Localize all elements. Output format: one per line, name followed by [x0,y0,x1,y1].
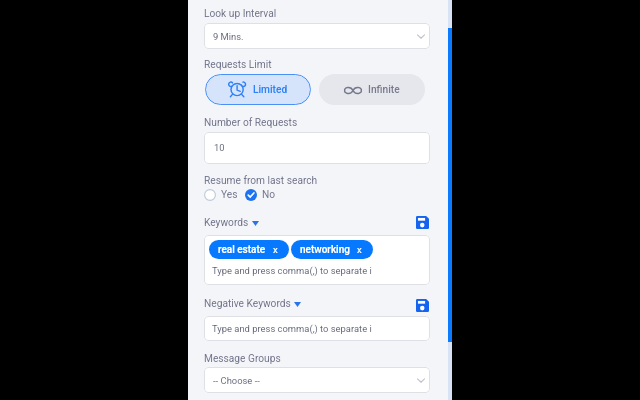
staticText: Limited [253,84,288,96]
button[interactable]: Save negative keywords [415,298,429,312]
button[interactable]: Negative Keywords [204,298,301,310]
staticText: Infinite [368,84,400,96]
staticText: Resume from last search [204,175,318,187]
button[interactable]: Yes [204,189,238,201]
staticText: Keywords [204,217,249,229]
button[interactable]: networking [291,240,373,259]
button[interactable]: Limited [205,74,311,105]
button[interactable]: -- Choose -- [204,367,430,393]
staticText: x [357,244,362,255]
staticText: networking [300,244,350,256]
staticText: 9 Mins. [213,31,244,42]
staticText: -- Choose -- [213,375,260,386]
button[interactable]: Infinite [319,74,425,105]
button[interactable]: 10 [204,132,430,164]
staticText: Type and press comma(,) to separate i [212,323,372,334]
staticText: Requests Limit [204,59,272,71]
staticText: real estate [218,244,266,256]
button[interactable]: real estate [204,235,430,285]
staticText: Look up Interval [204,8,277,20]
staticText: 10 [214,142,225,153]
button[interactable]: Save keywords [415,215,429,229]
staticText: x [273,244,278,255]
staticText: Yes [221,189,238,201]
button[interactable]: Keywords [204,217,259,229]
staticText: Negative Keywords [204,298,291,310]
button[interactable]: 9 Mins. [204,23,430,49]
button[interactable]: No [245,189,276,201]
staticText: Type and press comma(,) to separate i [212,265,372,276]
staticText: Number of Requests [204,117,298,129]
button[interactable]: real estate [209,240,289,259]
staticText: Message Groups [204,353,281,365]
button[interactable]: Type and press comma(,) to separate i [204,316,430,341]
staticText: No [262,189,276,201]
